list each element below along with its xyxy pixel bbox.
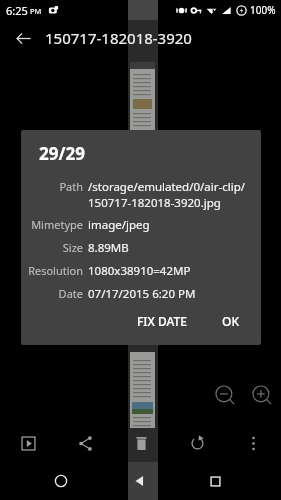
staticText: image/jpeg [88,217,150,233]
staticText: OK [222,313,239,329]
button[interactable]: Zoom out [208,378,242,412]
button[interactable]: Delete [113,425,169,461]
button[interactable]: More options [225,425,281,461]
button[interactable]: Home [43,463,79,499]
staticText: 150717-182018-3920 [45,28,192,48]
staticText: 1080x38910=42MP [88,263,191,279]
staticText: 100% [250,3,276,17]
button[interactable]: Play slideshow [0,425,57,461]
staticText: PM [30,6,42,16]
staticText: FIX DATE [137,313,188,329]
staticText: Size [62,240,83,255]
staticText: Resolution [28,263,83,278]
staticText: /storage/emulated/0/air-clip/ 150717-182… [88,179,245,210]
staticText: Mimetype [31,217,83,232]
button[interactable]: Share [57,425,113,461]
staticText: 07/17/2015 6:20 PM [88,286,196,302]
button[interactable]: Back [122,463,158,499]
staticText: 6:25 [6,3,28,18]
button[interactable]: FIX DATE [129,307,196,335]
staticText: 29/29 [39,142,85,165]
staticText: Path [59,179,83,194]
button[interactable]: Recent apps [197,463,233,499]
button[interactable]: Rotate [169,425,225,461]
button[interactable]: Navigate up [10,25,36,51]
button[interactable]: OK [214,307,247,335]
button[interactable]: Zoom in [245,378,279,412]
staticText: 8.89MB [88,240,129,256]
staticText: Date [58,286,83,301]
